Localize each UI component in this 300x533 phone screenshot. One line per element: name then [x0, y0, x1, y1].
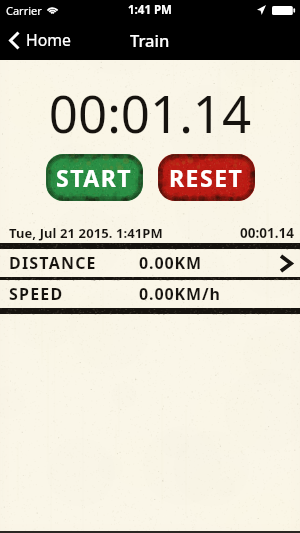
other: Location services active [257, 5, 266, 15]
staticText: 00:01.14 [240, 224, 294, 242]
button[interactable]: SPEED [0, 280, 300, 308]
staticText: Train [130, 29, 170, 51]
button[interactable]: RESET [158, 154, 255, 201]
button[interactable]: DISTANCE [0, 249, 300, 277]
staticText: 00:01.14 [0, 78, 300, 147]
staticText: DISTANCE [9, 252, 97, 274]
staticText: SPEED [9, 283, 64, 305]
staticText: START [56, 162, 133, 193]
staticText: 0.00KM [139, 252, 203, 274]
staticText: RESET [169, 162, 244, 193]
button[interactable]: Home [0, 20, 79, 60]
other: Wi-Fi signal [47, 6, 58, 15]
button[interactable]: START [46, 154, 143, 201]
other: Battery full [272, 6, 295, 15]
staticText: Carrier [6, 3, 42, 18]
staticText: Tue, Jul 21 2015. 1:41PM [9, 224, 163, 242]
staticText: 1:41 PM [128, 2, 172, 18]
staticText: 0.00KM/h [139, 283, 221, 305]
staticText: Home [26, 29, 71, 51]
